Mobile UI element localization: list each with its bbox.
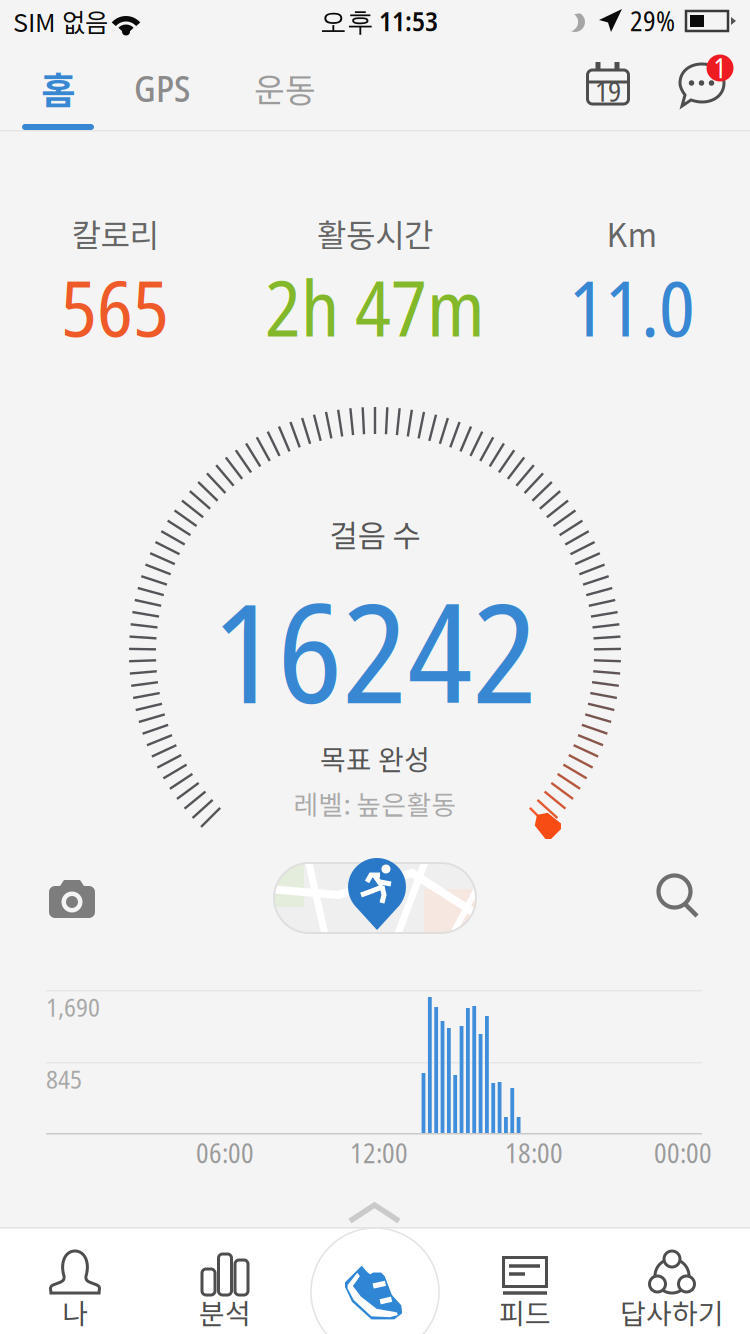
- staticText: 나: [62, 1292, 88, 1332]
- button[interactable]: Search: [354, 645, 396, 689]
- button[interactable]: Calendar: [354, 646, 396, 688]
- staticText: 칼로리: [71, 210, 158, 256]
- staticText: 활동시간: [317, 210, 433, 256]
- button[interactable]: 운동: [335, 645, 415, 689]
- staticText: 19: [595, 72, 621, 110]
- button[interactable]: Messages: [346, 641, 404, 693]
- staticText: 06:00: [196, 1135, 254, 1171]
- staticText: 분석: [199, 1292, 251, 1332]
- button[interactable]: GPS: [335, 647, 415, 687]
- staticText: 2h 47m: [265, 255, 485, 359]
- staticText: 1: [713, 50, 726, 86]
- staticText: 피드: [499, 1292, 551, 1332]
- button[interactable]: 나: [305, 644, 445, 690]
- staticText: 답사하기: [620, 1292, 724, 1332]
- staticText: 12:00: [350, 1135, 408, 1171]
- staticText: 845: [46, 1062, 82, 1096]
- staticText: 오후 11:53: [320, 3, 438, 39]
- button[interactable]: Camera: [352, 648, 398, 686]
- staticText: 운동: [254, 64, 316, 112]
- button[interactable]: 답사하기: [305, 644, 445, 690]
- staticText: 11.0: [569, 255, 695, 359]
- staticText: 16242: [212, 556, 537, 743]
- button[interactable]: Start workout: [311, 603, 439, 731]
- button[interactable]: 분석: [305, 644, 445, 690]
- staticText: 목표 완성: [320, 738, 430, 778]
- staticText: Km: [606, 210, 657, 256]
- staticText: 걸음 수: [329, 512, 420, 556]
- staticText: SIM 없음: [13, 3, 108, 39]
- button[interactable]: 홈: [335, 645, 415, 689]
- button[interactable]: 피드: [305, 644, 445, 690]
- staticText: 18:00: [505, 1135, 563, 1171]
- button[interactable]: Route map: [272, 625, 478, 709]
- staticText: 1,690: [46, 990, 100, 1024]
- staticText: 00:00: [654, 1135, 712, 1171]
- staticText: 29%: [630, 3, 675, 39]
- staticText: 565: [61, 255, 169, 359]
- staticText: GPS: [134, 63, 190, 112]
- staticText: 레벨: 높은활동: [293, 784, 456, 822]
- staticText: 홈: [41, 61, 75, 115]
